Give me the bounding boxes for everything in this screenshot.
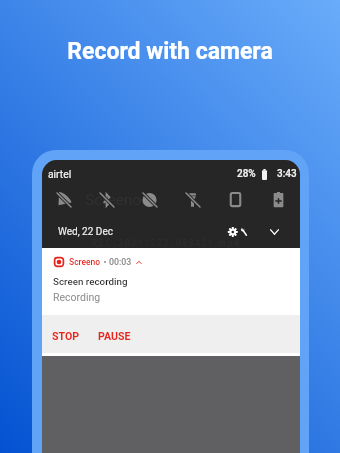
staticText: Screen recording xyxy=(53,276,128,287)
staticText: Wed, 22 Dec xyxy=(58,226,113,238)
staticText: Screeno xyxy=(85,191,142,209)
button[interactable]: Settings xyxy=(221,219,253,245)
staticText: 00:03 xyxy=(109,257,132,267)
button[interactable]: Bluetooth off xyxy=(85,186,128,214)
staticText: Screeno xyxy=(69,257,101,267)
staticText: 28% xyxy=(237,168,256,180)
staticText: 3:43 xyxy=(277,168,297,180)
button[interactable]: PAUSE xyxy=(91,322,138,350)
button[interactable]: Wi-Fi off xyxy=(42,186,85,214)
staticText: Record with camera xyxy=(0,38,340,65)
staticText: airtel xyxy=(48,168,72,180)
button[interactable]: Battery saver xyxy=(257,186,300,214)
button[interactable]: Collapse xyxy=(261,219,287,245)
staticText: STOP xyxy=(52,330,80,342)
staticText: PAUSE xyxy=(98,330,131,342)
button[interactable]: STOP xyxy=(45,322,87,350)
staticText: Recording xyxy=(53,291,101,303)
button[interactable]: Auto rotate xyxy=(214,186,257,214)
button[interactable]: Flashlight off xyxy=(171,186,214,214)
button[interactable]: Screeno xyxy=(42,248,300,315)
button[interactable]: Do not disturb off xyxy=(128,186,171,214)
